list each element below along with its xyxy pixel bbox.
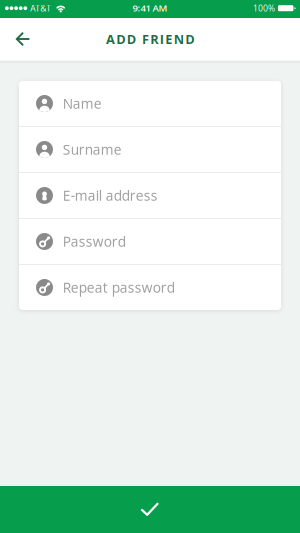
staticText: Surname — [63, 140, 122, 159]
button[interactable]: Surname — [19, 127, 281, 172]
staticText: F — [142, 30, 149, 48]
staticText: 100% — [253, 2, 275, 14]
staticText: D — [185, 30, 194, 48]
staticText: D — [127, 30, 136, 48]
staticText: D — [116, 30, 125, 48]
staticText: I — [160, 30, 164, 48]
button[interactable]: Confirm — [0, 486, 300, 533]
staticText: 9:41 AM — [132, 1, 167, 14]
button[interactable]: Back — [0, 18, 42, 60]
staticText: AT&T — [30, 2, 51, 14]
staticText: Password — [63, 232, 126, 251]
button[interactable]: Repeat password — [19, 265, 281, 310]
staticText: R — [150, 30, 158, 48]
staticText: Repeat password — [63, 278, 175, 297]
staticText: A — [106, 30, 115, 48]
staticText: N — [174, 30, 184, 48]
staticText: Name — [63, 94, 102, 113]
staticText: E — [165, 30, 172, 48]
button[interactable]: Password — [19, 219, 281, 264]
button[interactable]: Name — [19, 81, 281, 126]
staticText: E-mail address — [63, 186, 158, 205]
button[interactable]: E-mail address — [19, 173, 281, 218]
